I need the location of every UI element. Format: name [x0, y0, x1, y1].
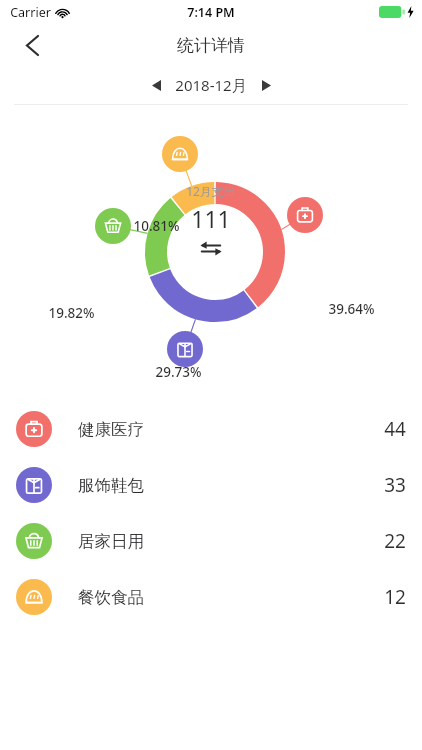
button[interactable]: 服饰鞋包 — [0, 457, 422, 513]
staticText: 服饰鞋包 — [78, 475, 144, 496]
staticText: 12月支出 — [186, 183, 236, 199]
staticText: 44 — [384, 416, 406, 442]
staticText: 33 — [384, 472, 406, 498]
staticText: 居家日用 — [78, 531, 144, 552]
button[interactable]: 健康医疗 — [0, 401, 422, 457]
staticText: 29.73% — [155, 363, 202, 381]
button[interactable]: Switch income expense — [199, 236, 223, 260]
staticText: 10.81% — [133, 217, 180, 235]
staticText: 健康医疗 — [78, 419, 144, 440]
staticText: 2018-12月 — [175, 75, 247, 95]
button[interactable]: 居家日用 — [0, 513, 422, 569]
staticText: 22 — [384, 528, 406, 554]
staticText: 19.82% — [48, 304, 95, 322]
staticText: 餐饮食品 — [78, 587, 144, 608]
button[interactable]: 餐饮食品 — [0, 569, 422, 625]
staticText: Carrier — [10, 4, 51, 21]
button[interactable]: Back — [12, 25, 52, 65]
staticText: 统计详情 — [177, 35, 245, 56]
button[interactable]: Next month — [253, 72, 279, 98]
staticText: 7:14 PM — [187, 4, 235, 21]
staticText: 39.64% — [328, 300, 375, 318]
button[interactable]: Previous month — [143, 72, 169, 98]
staticText: 12 — [384, 584, 406, 610]
staticText: 111 — [191, 203, 231, 234]
